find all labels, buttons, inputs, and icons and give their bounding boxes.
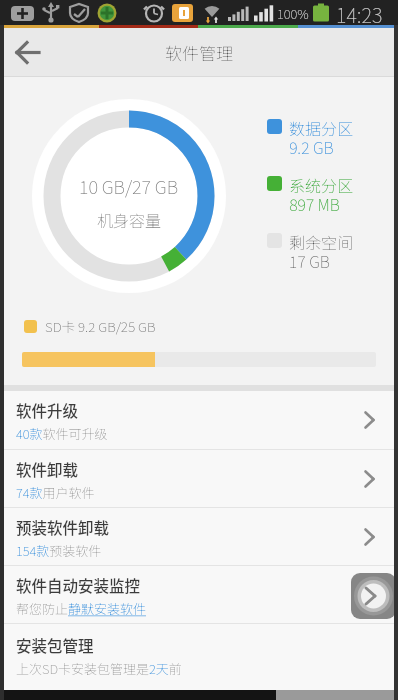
staticText: 14:23 — [336, 0, 383, 25]
button[interactable]: 软件卸载 — [0, 450, 398, 507]
button[interactable] — [0, 28, 56, 77]
staticText: 100% — [277, 4, 309, 23]
staticText: 帮您防止静默安装软件 — [16, 599, 147, 618]
staticText: SD卡 9.2 GB/25 GB — [45, 316, 156, 336]
staticText: 软件卸载 — [16, 458, 79, 480]
staticText: 软件自动安装监控 — [16, 574, 141, 596]
staticText: 软件升级 — [16, 399, 79, 421]
staticText: 897 MB — [289, 192, 340, 215]
staticText: 数据分区 — [289, 116, 354, 139]
staticText: 10 GB/27 GB — [79, 173, 179, 199]
staticText: 剩余空间 — [289, 230, 354, 253]
staticText: 机身容量 — [97, 208, 162, 231]
staticText: 17 GB — [289, 249, 330, 272]
staticText: 软件管理 — [165, 40, 233, 65]
staticText: 40款软件可升级 — [16, 424, 108, 443]
button[interactable] — [351, 573, 396, 619]
button[interactable]: 软件自动安装监控 — [0, 566, 398, 623]
staticText: 上次SD卡安装包管理是2天前 — [16, 659, 182, 678]
staticText: 预装软件卸载 — [16, 516, 110, 538]
button[interactable]: 软件升级 — [0, 391, 398, 449]
button[interactable]: 预装软件卸载 — [0, 508, 398, 565]
staticText: 安装包管理 — [16, 634, 94, 656]
staticText: 9.2 GB — [289, 135, 334, 158]
staticText: 系统分区 — [289, 173, 354, 196]
staticText: 74款用户软件 — [16, 483, 95, 502]
button[interactable]: 安装包管理 — [0, 624, 398, 693]
staticText: 154款预装软件 — [16, 541, 102, 560]
